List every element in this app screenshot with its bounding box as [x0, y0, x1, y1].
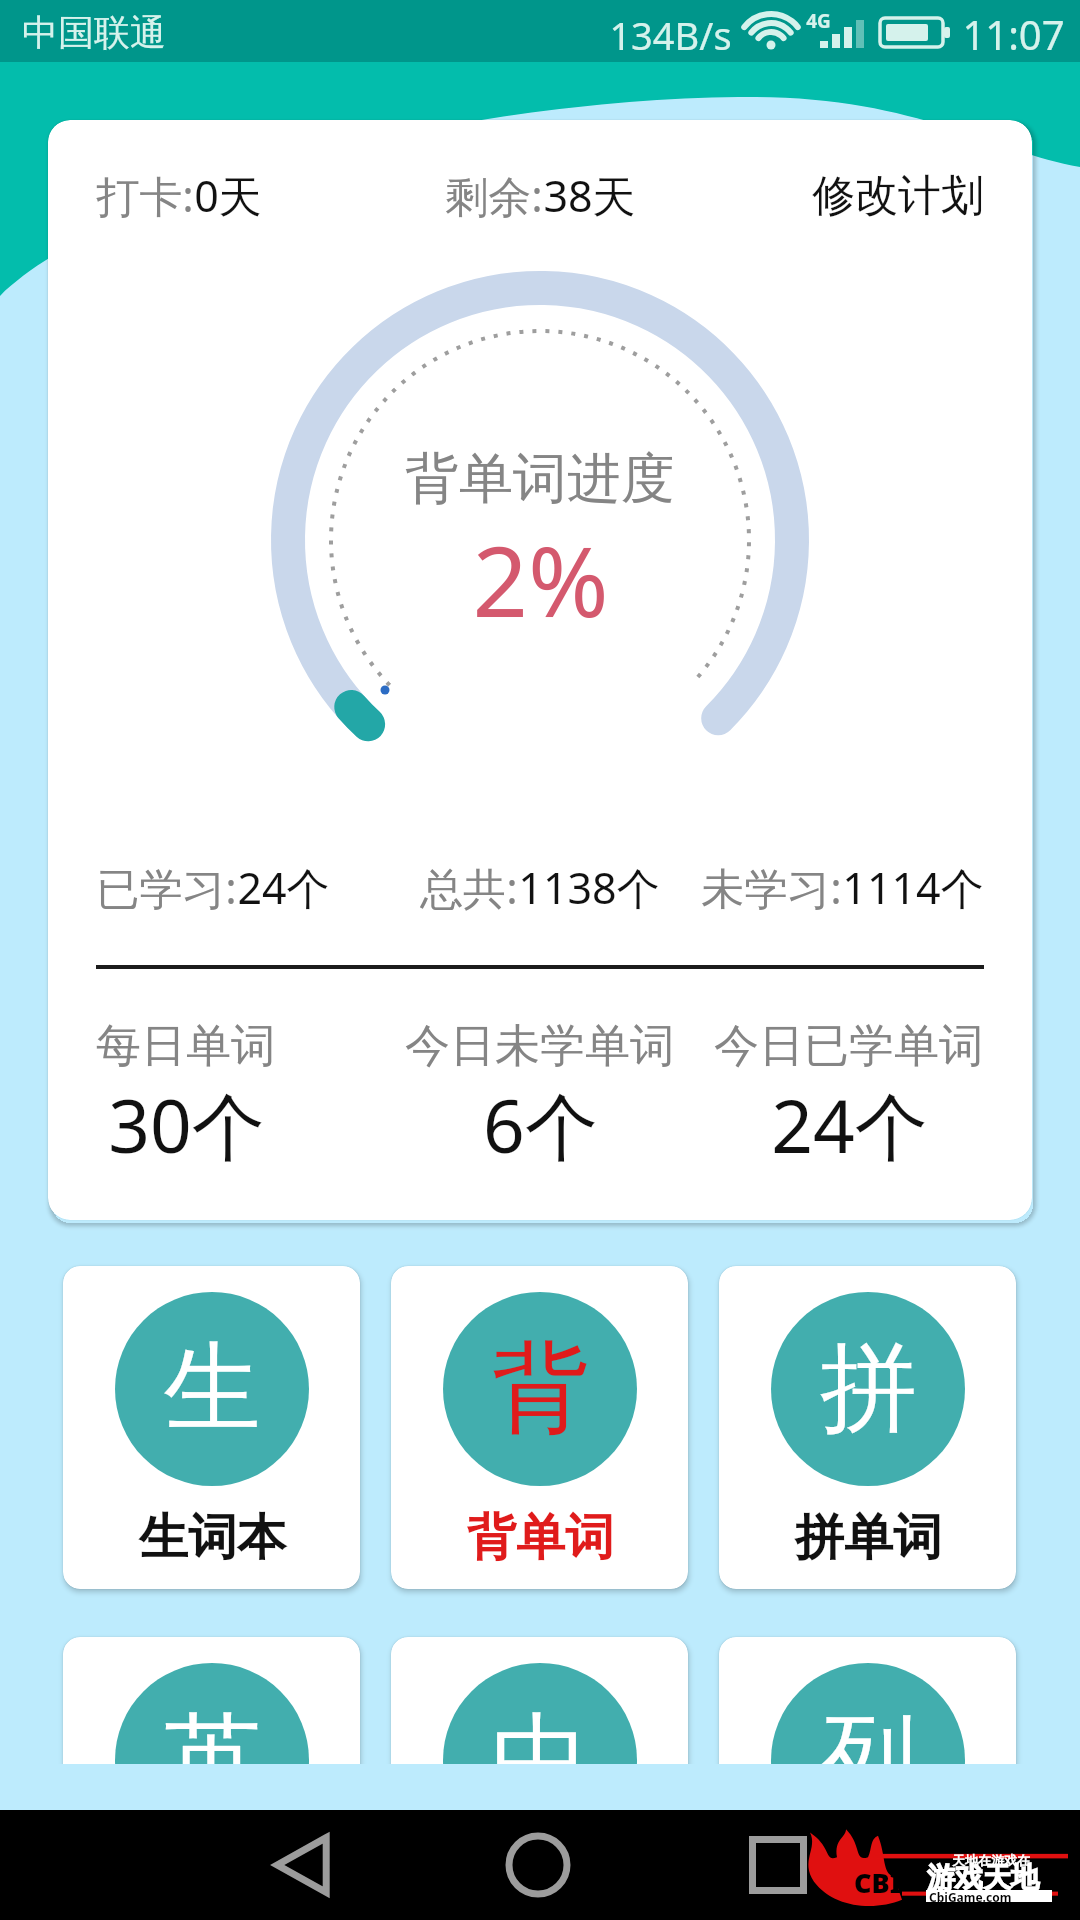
staticText: 游戏天地: [927, 1860, 1039, 1895]
button[interactable]: 中: [391, 1637, 688, 1764]
staticText: 生: [164, 1328, 261, 1450]
staticText: 11:07: [962, 7, 1065, 61]
staticText: 0天: [194, 166, 262, 225]
button[interactable]: 修改计划: [693, 169, 984, 223]
staticText: CbiGame.com: [929, 1889, 1012, 1905]
staticText: 拼单词: [795, 1507, 942, 1569]
staticText: 30个: [108, 1075, 265, 1175]
staticText: 天地在游戏在: [952, 1852, 1030, 1868]
staticText: 24个: [771, 1075, 928, 1175]
staticText: 24个: [237, 858, 330, 917]
staticText: 已学习:: [96, 858, 237, 917]
staticText: 背单词进度: [405, 445, 675, 513]
staticText: 英: [164, 1699, 261, 1764]
button[interactable]: 背: [391, 1266, 688, 1589]
staticText: 未学习:: [701, 858, 842, 917]
staticText: 拼: [820, 1328, 917, 1450]
button[interactable]: 拼: [719, 1266, 1016, 1589]
staticText: CBI: [854, 1864, 902, 1901]
staticText: 中: [492, 1699, 589, 1764]
staticText: 4G: [806, 8, 831, 34]
button[interactable]: 今日已学单词: [688, 1018, 984, 1175]
staticText: 列: [820, 1699, 917, 1764]
button[interactable]: Recent apps: [742, 1829, 814, 1901]
staticText: 1138个: [518, 858, 660, 917]
button[interactable]: 生: [63, 1266, 360, 1589]
staticText: 今日已学单词: [714, 1018, 984, 1075]
staticText: 1114个: [842, 858, 984, 917]
staticText: 134B/s: [609, 9, 732, 61]
button[interactable]: 剩余:: [387, 166, 693, 225]
staticText: 每日单词: [96, 1018, 276, 1075]
staticText: 38天: [543, 166, 636, 225]
staticText: 修改计划: [812, 169, 984, 223]
button[interactable]: Home: [502, 1829, 574, 1901]
button[interactable]: Back: [265, 1829, 337, 1901]
staticText: 打卡:: [96, 166, 194, 225]
button[interactable]: 今日未学单词: [392, 1018, 688, 1175]
staticText: 总共:: [420, 858, 518, 917]
staticText: 中国联通: [22, 10, 166, 55]
staticText: 背: [492, 1328, 589, 1450]
staticText: 2%: [472, 513, 609, 645]
button[interactable]: 每日单词: [96, 1018, 392, 1175]
staticText: 生词本: [139, 1507, 286, 1569]
staticText: 剩余:: [445, 166, 543, 225]
staticText: 背单词: [467, 1507, 614, 1569]
button[interactable]: 打卡:: [96, 166, 387, 225]
button[interactable]: 列: [719, 1637, 1016, 1764]
button[interactable]: 英: [63, 1637, 360, 1764]
staticText: 今日未学单词: [405, 1018, 675, 1075]
staticText: 6个: [483, 1075, 598, 1175]
